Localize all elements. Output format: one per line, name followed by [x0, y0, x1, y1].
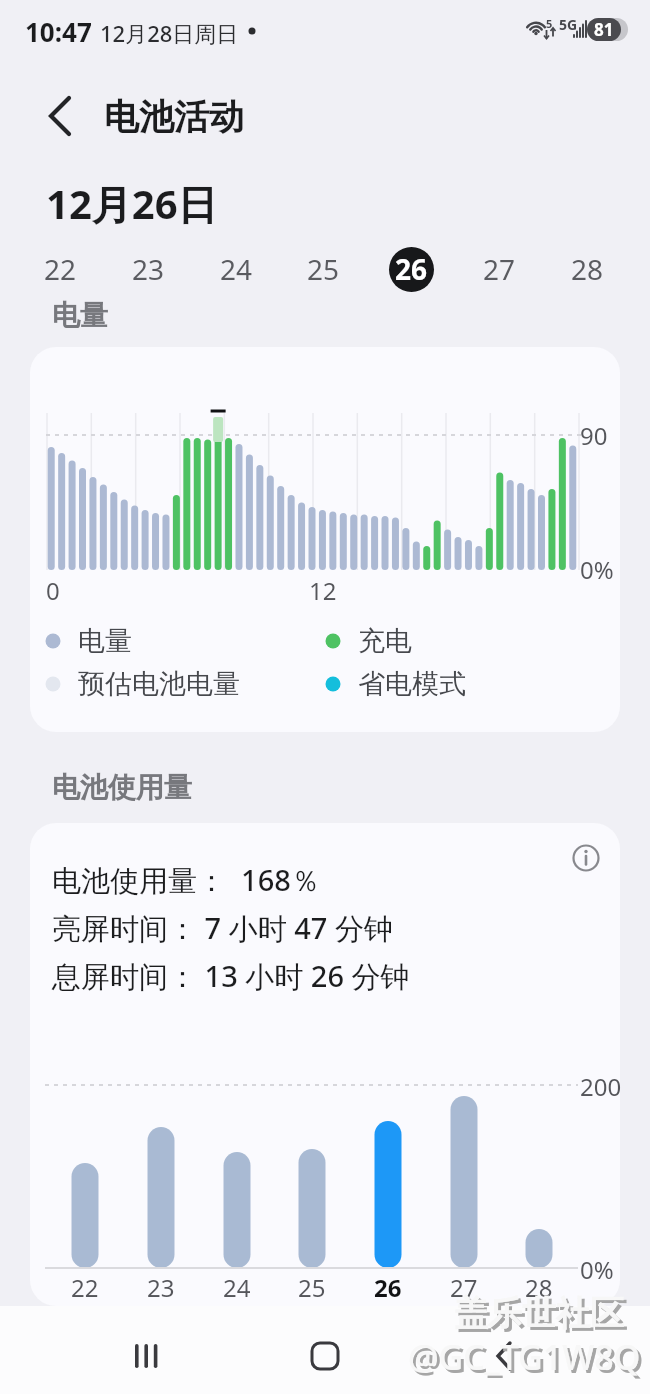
staticText: 28: [525, 1271, 553, 1301]
staticText: 5: [546, 16, 553, 28]
staticText: 24: [223, 1271, 251, 1301]
button[interactable]: 25: [296, 242, 350, 296]
staticText: 27: [483, 250, 516, 288]
button[interactable]: 22: [33, 242, 87, 296]
staticText: 盖乐世社区: [457, 1295, 627, 1338]
button[interactable]: [295, 1326, 355, 1382]
staticText: 亮屏时间： 7 小时 47 分钟: [52, 908, 393, 948]
staticText: 0%: [580, 1253, 614, 1283]
button[interactable]: 26: [384, 242, 438, 296]
staticText: 22: [71, 1271, 99, 1301]
staticText: 22: [44, 250, 77, 288]
staticText: 电池使用量： 168％: [52, 860, 320, 900]
staticText: 200: [580, 1070, 622, 1100]
staticText: 10:47: [25, 14, 92, 48]
staticText: 26: [395, 250, 428, 288]
staticText: 81: [594, 18, 614, 41]
button[interactable]: 27: [472, 242, 526, 296]
staticText: 23: [147, 1271, 175, 1301]
staticText: @GC_TG1W8Q9: [411, 1337, 650, 1383]
staticText: 息屏时间： 13 小时 26 分钟: [52, 956, 410, 996]
staticText: 充电: [358, 624, 412, 658]
staticText: 28: [571, 250, 604, 288]
staticText: 电量: [78, 624, 132, 658]
button[interactable]: 23: [121, 242, 175, 296]
staticText: 预估电池电量: [78, 667, 240, 701]
button[interactable]: [564, 836, 608, 880]
staticText: 0%: [580, 553, 614, 583]
button[interactable]: [474, 1326, 534, 1382]
staticText: 25: [307, 250, 340, 288]
button[interactable]: 24: [209, 242, 263, 296]
staticText: 25: [298, 1271, 326, 1301]
staticText: 0: [46, 574, 60, 604]
staticText: 12: [309, 574, 337, 604]
staticText: 电池活动: [104, 95, 244, 139]
staticText: 12月28日周日: [100, 18, 239, 46]
staticText: 省电模式: [358, 667, 466, 701]
staticText: 24: [220, 250, 253, 288]
staticText: 27: [450, 1271, 478, 1301]
staticText: 12月26日: [46, 176, 218, 230]
staticText: @GC_TG1W8Q9: [408, 1334, 650, 1380]
staticText: 电池使用量: [52, 770, 192, 805]
staticText: 90: [580, 419, 608, 449]
staticText: 5G: [559, 15, 578, 32]
button[interactable]: [38, 93, 86, 141]
staticText: 盖乐世社区: [454, 1292, 624, 1335]
staticText: 23: [132, 250, 165, 288]
staticText: 26: [374, 1271, 402, 1301]
staticText: 电量: [52, 298, 108, 333]
button[interactable]: [116, 1326, 176, 1382]
button[interactable]: 28: [560, 242, 614, 296]
